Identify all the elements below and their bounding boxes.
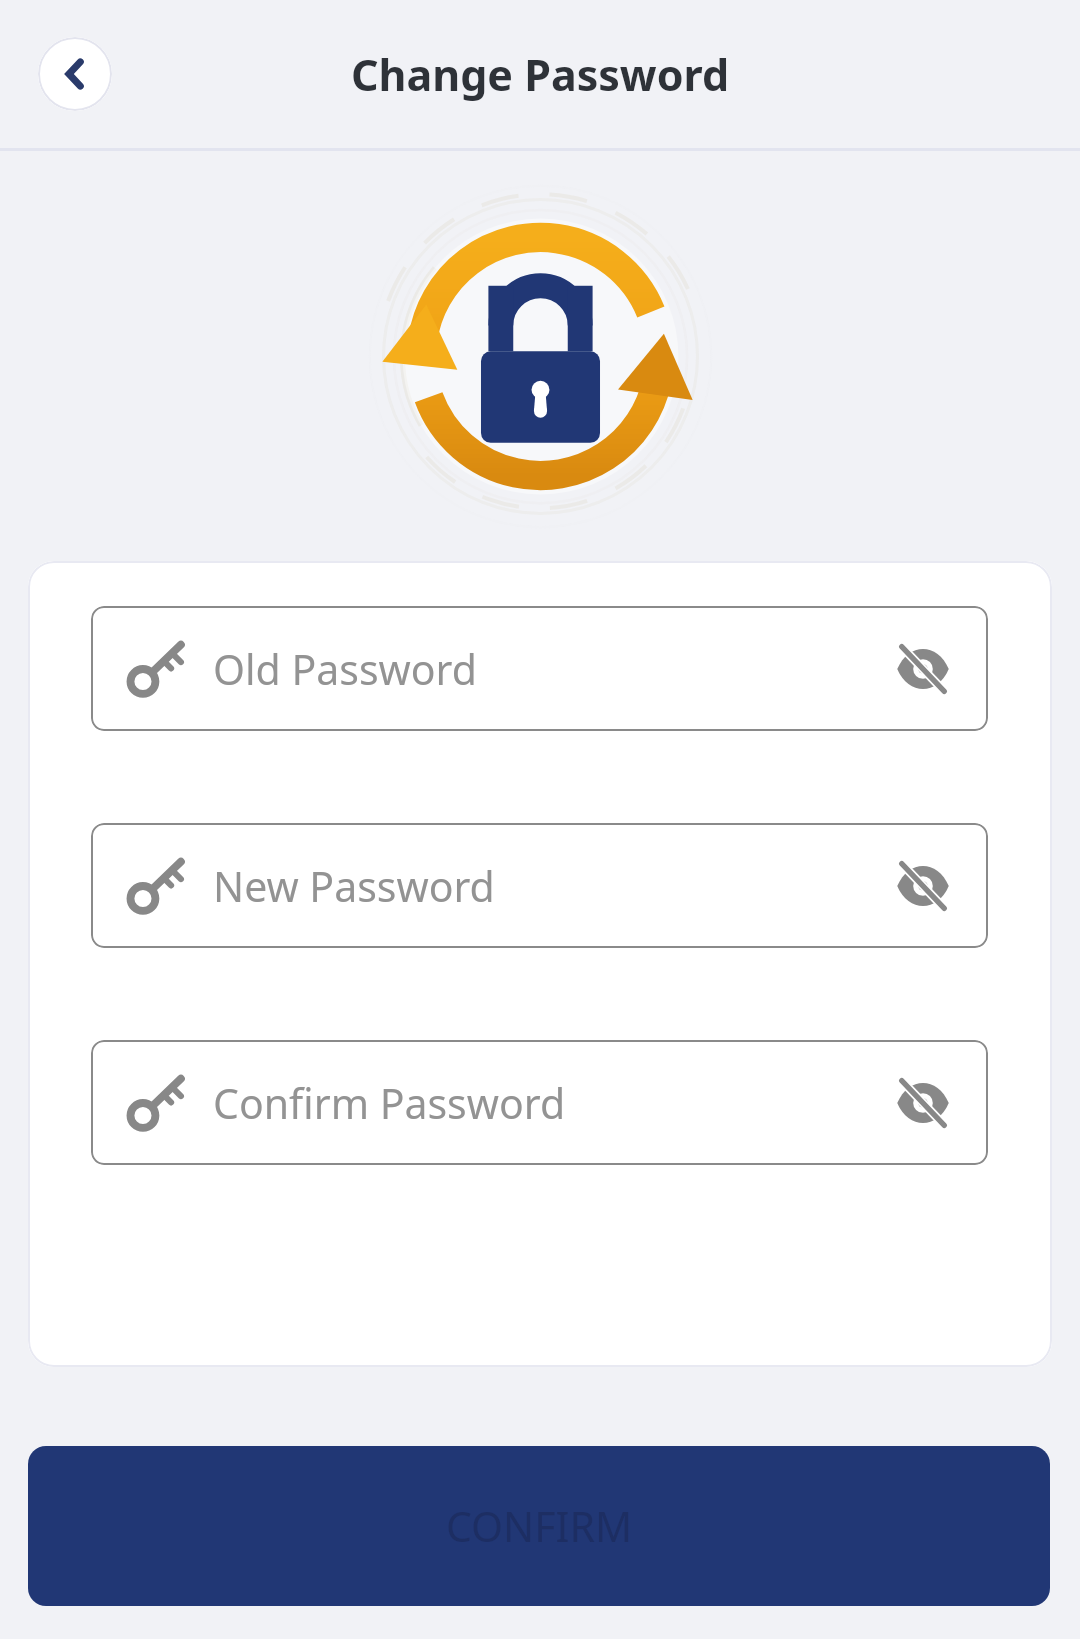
button[interactable]: CONFIRM <box>28 1446 1050 1606</box>
button[interactable]: New Password <box>91 823 988 948</box>
button[interactable]: Show password <box>892 638 954 700</box>
staticText: Change Password <box>0 45 1080 104</box>
staticText: New Password <box>213 858 892 914</box>
staticText: Old Password <box>213 641 892 697</box>
button[interactable]: Show password <box>892 1072 954 1134</box>
button[interactable]: Back <box>38 37 112 111</box>
button[interactable]: Old Password <box>91 606 988 731</box>
button[interactable]: Confirm Password <box>91 1040 988 1165</box>
button[interactable]: Show password <box>892 855 954 917</box>
staticText: CONFIRM <box>446 1498 633 1554</box>
staticText: Confirm Password <box>213 1075 892 1131</box>
